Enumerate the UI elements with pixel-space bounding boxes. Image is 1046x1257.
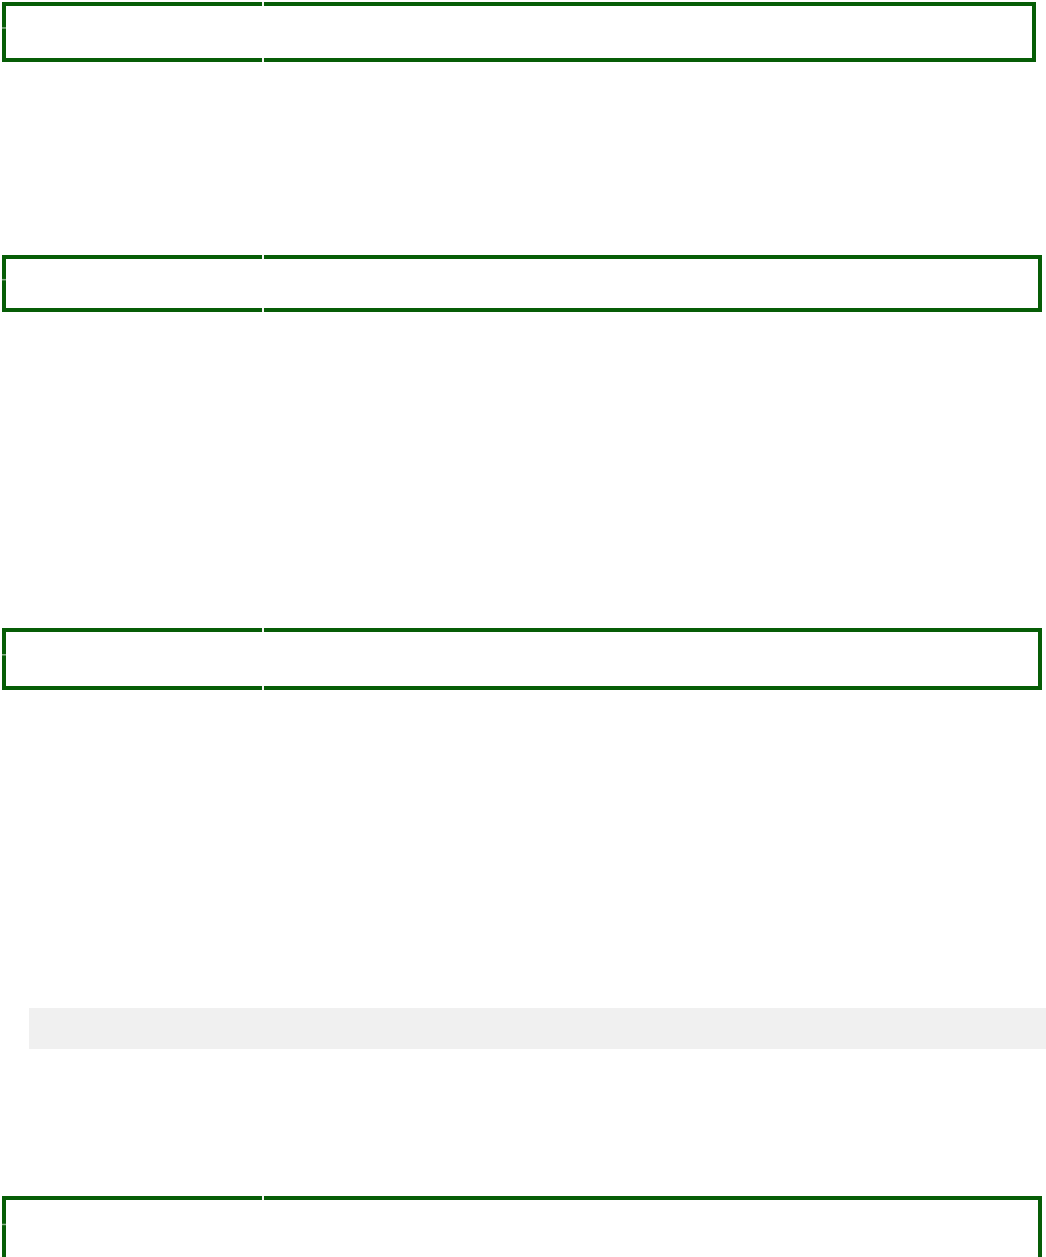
button[interactable]: Field 2 (2, 255, 1042, 312)
button[interactable]: Field 1 (2, 2, 1036, 62)
button[interactable]: Field 3 (2, 628, 1042, 690)
button[interactable]: Field 4 (2, 1196, 1042, 1257)
